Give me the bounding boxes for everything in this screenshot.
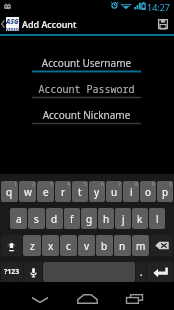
staticText: i — [130, 185, 133, 199]
button[interactable]: e — [37, 181, 54, 202]
button[interactable]: b — [96, 235, 113, 256]
staticText: 9 — [152, 181, 155, 188]
staticText: 5 — [84, 181, 87, 188]
staticText: 8 — [135, 181, 138, 188]
staticText: x — [48, 239, 54, 253]
button[interactable]: c — [60, 235, 77, 256]
staticText: Account Username — [32, 56, 141, 70]
button[interactable]: k — [132, 208, 148, 229]
staticText: r — [61, 185, 66, 199]
staticText: a — [16, 212, 22, 226]
button[interactable]: t — [72, 181, 88, 202]
staticText: e — [43, 185, 49, 199]
staticText: 14:27 — [147, 1, 171, 13]
button[interactable]: w — [19, 181, 36, 202]
staticText: 1 — [14, 181, 17, 188]
staticText: h — [103, 212, 110, 226]
staticText: 2 — [32, 181, 35, 188]
button[interactable]: n — [114, 235, 131, 256]
button[interactable]: Home — [64, 282, 111, 310]
button[interactable]: x — [42, 235, 59, 256]
button[interactable]: z — [23, 235, 41, 256]
staticText: m — [136, 239, 146, 253]
button[interactable]: j — [115, 208, 131, 229]
button[interactable]: q — [1, 181, 18, 202]
button[interactable]: p — [157, 181, 173, 202]
staticText: ?123 — [4, 267, 20, 277]
staticText: v — [84, 239, 90, 253]
button[interactable]: Save — [152, 13, 174, 34]
staticText: w — [24, 185, 32, 199]
button[interactable]: u — [106, 181, 122, 202]
staticText: 3 — [50, 181, 53, 188]
button[interactable]: i — [123, 181, 139, 202]
button[interactable]: Navigate up — [0, 13, 20, 34]
button[interactable]: v — [78, 235, 95, 256]
staticText: Account Nickname — [32, 108, 141, 122]
button[interactable]: g — [81, 208, 97, 229]
button[interactable]: d — [46, 208, 63, 229]
staticText: VIDEO — [6, 27, 19, 31]
button[interactable]: Voice input — [24, 262, 42, 282]
staticText: c — [66, 239, 71, 253]
button[interactable]: Recent apps — [111, 282, 158, 310]
staticText: q — [6, 185, 13, 199]
staticText: p — [162, 185, 169, 199]
button[interactable]: m — [132, 235, 149, 256]
button[interactable]: a — [10, 208, 27, 229]
staticText: . — [140, 266, 143, 278]
staticText: u — [111, 185, 118, 199]
button[interactable]: o — [140, 181, 156, 202]
staticText: ASG — [6, 17, 19, 26]
staticText: b — [101, 239, 108, 253]
button[interactable]: s — [28, 208, 45, 229]
button[interactable]: r — [55, 181, 71, 202]
staticText: Account Password — [32, 82, 141, 96]
staticText: k — [137, 212, 143, 226]
button[interactable]: Back — [16, 282, 63, 310]
button[interactable]: Symbols — [1, 262, 23, 282]
staticText: 0 — [169, 181, 172, 188]
button[interactable]: y — [89, 181, 105, 202]
staticText: 6 — [101, 181, 104, 188]
button[interactable]: Period — [136, 262, 146, 282]
staticText: s — [34, 212, 39, 226]
staticText: l — [156, 212, 159, 226]
staticText: 7 — [118, 181, 121, 188]
button[interactable]: Delete — [150, 235, 173, 256]
staticText: t — [78, 185, 82, 199]
button[interactable]: Shift — [1, 235, 22, 256]
button[interactable]: f — [64, 208, 80, 229]
staticText: z — [30, 239, 35, 253]
staticText: o — [145, 185, 152, 199]
staticText: g — [86, 212, 93, 226]
staticText: n — [119, 239, 126, 253]
staticText: Add Account — [22, 18, 77, 30]
button[interactable]: h — [98, 208, 114, 229]
button[interactable]: l — [149, 208, 165, 229]
staticText: f — [70, 212, 74, 226]
staticText: y — [94, 185, 100, 199]
button[interactable]: Enter — [147, 262, 173, 282]
staticText: 4 — [67, 181, 70, 188]
staticText: j — [122, 212, 125, 226]
staticText: d — [51, 212, 58, 226]
